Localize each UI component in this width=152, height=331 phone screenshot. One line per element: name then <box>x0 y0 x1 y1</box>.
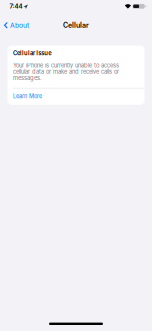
staticText: Your iPhone is currently unable to acces… <box>13 62 119 69</box>
button[interactable]: Back to About <box>0 21 29 29</box>
staticText: Learn More <box>13 93 42 100</box>
staticText: messages. <box>13 74 42 81</box>
staticText: Issue <box>36 49 51 57</box>
staticText: cellular data or make and receive calls … <box>13 68 119 75</box>
staticText: Cellular <box>63 21 89 29</box>
staticText: 7:44 <box>9 3 22 10</box>
staticText: Cellular <box>13 49 35 57</box>
staticText: About <box>10 21 29 29</box>
button[interactable]: Learn More <box>13 88 144 105</box>
